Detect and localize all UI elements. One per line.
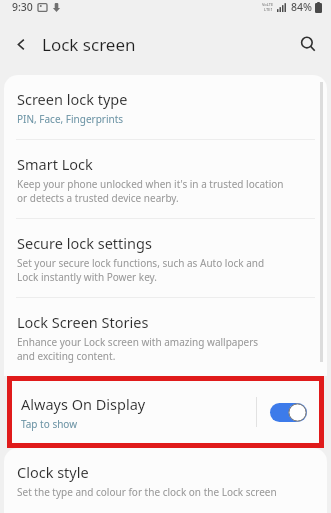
staticText: VoLTE [262,2,274,7]
button[interactable]: Clock style [4,448,327,513]
staticText: Enhance your Lock screen with amazing wa… [17,335,259,363]
staticText: Set your secure lock functions, such as … [17,256,265,284]
staticText: Clock style [17,462,89,482]
button[interactable]: Back [0,23,42,65]
button[interactable]: Smart Lock [4,140,327,218]
button[interactable]: Always On Display toggle [257,381,319,443]
staticText: PIN, Face, Fingerprints [17,112,124,126]
button[interactable]: Screen lock type [4,75,327,139]
button[interactable]: Search [285,22,331,66]
button[interactable]: Secure lock settings [4,219,327,297]
staticText: 9:30 [12,0,33,14]
staticText: Secure lock settings [17,233,152,253]
staticText: Set the type and colour for the clock on… [17,485,277,500]
staticText: Always On Display [21,394,146,414]
staticText: 84% [291,0,312,14]
staticText: Lock screen [42,33,136,56]
staticText: Keep your phone unlocked when it's in a … [17,177,284,205]
staticText: Screen lock type [17,89,128,109]
button[interactable]: Always On Display [12,381,256,443]
staticText: Tap to show [21,417,78,431]
button[interactable]: Lock Screen Stories [4,298,327,376]
staticText: Lock Screen Stories [17,312,149,332]
staticText: LTE1 [264,7,273,12]
staticText: Smart Lock [17,154,93,174]
